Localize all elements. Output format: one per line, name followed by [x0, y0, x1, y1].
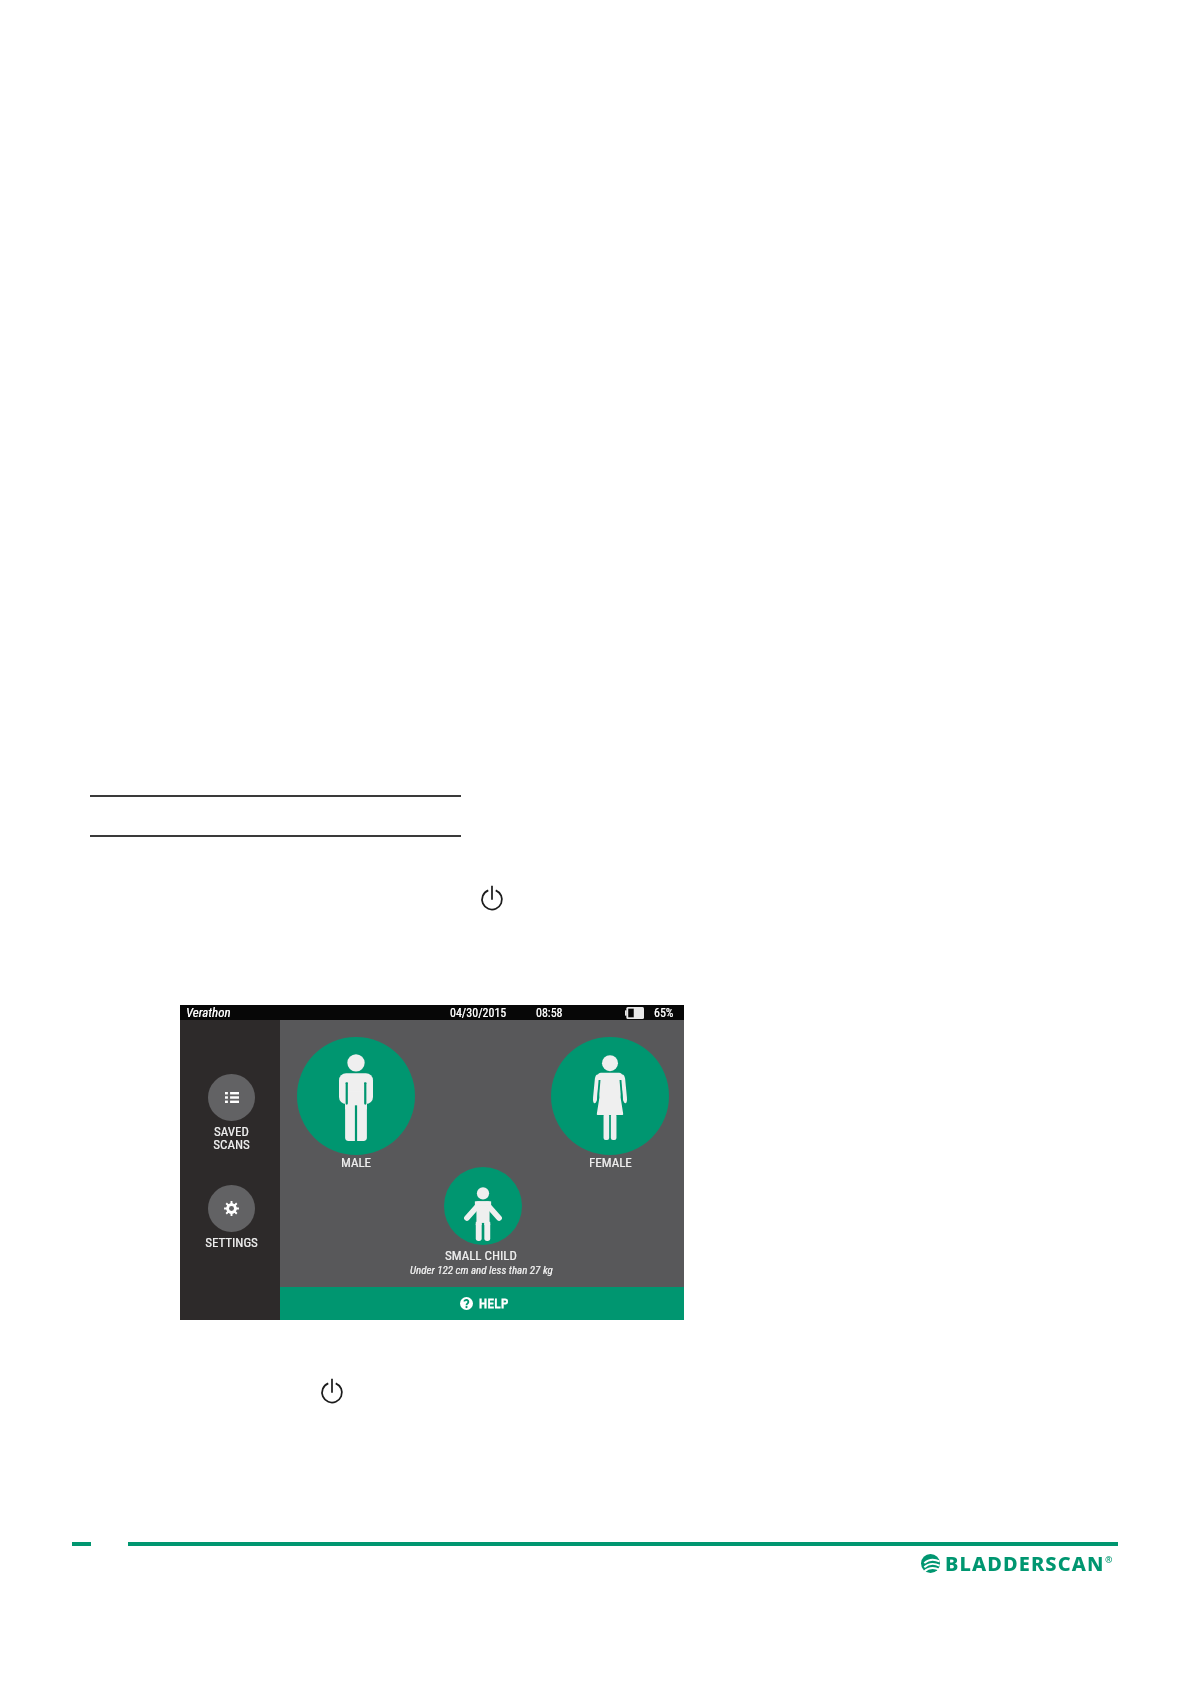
staticText: Verathon [186, 1005, 231, 1020]
other: Power [478, 884, 506, 912]
staticText: HELP [479, 1296, 509, 1311]
staticText: 65% [654, 1006, 674, 1020]
staticText: FEMALE [589, 1155, 632, 1170]
staticText: SMALL CHILD [445, 1248, 517, 1263]
staticText: ® [1105, 1553, 1113, 1565]
button[interactable]: Saved scans [208, 1074, 255, 1152]
button[interactable]: Help [280, 1287, 684, 1320]
staticText: 04/30/2015 [450, 1006, 507, 1020]
other: Battery 65 percent [625, 1007, 644, 1019]
other: Power [318, 1377, 346, 1405]
button[interactable]: Small child [444, 1167, 522, 1245]
staticText: SAVED SCANS [213, 1124, 250, 1152]
staticText: 08:58 [536, 1006, 563, 1020]
staticText: Under 122 cm and less than 27 kg [410, 1264, 553, 1277]
button[interactable]: FEMALE [551, 1037, 669, 1170]
staticText: MALE [341, 1155, 372, 1170]
button[interactable]: MALE [297, 1037, 415, 1170]
button[interactable]: Settings [205, 1185, 258, 1250]
staticText: BLADDERSCAN [945, 1550, 1105, 1577]
other: Settings [224, 1201, 239, 1216]
other: Help [460, 1297, 473, 1310]
other: Saved scans [225, 1092, 239, 1103]
staticText: SETTINGS [205, 1235, 258, 1250]
